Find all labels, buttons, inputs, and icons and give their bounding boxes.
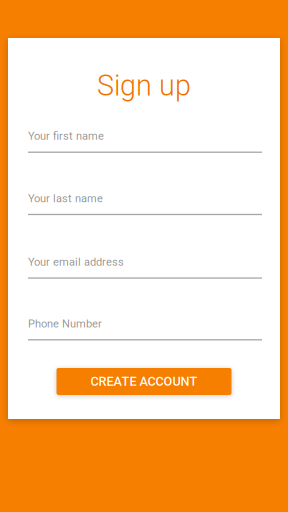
- button[interactable]: Your last name: [8, 192, 280, 215]
- staticText: Your last name: [28, 192, 103, 205]
- button[interactable]: Phone Number: [8, 317, 280, 340]
- staticText: Phone Number: [28, 317, 102, 330]
- staticText: Sign up: [97, 69, 191, 103]
- staticText: Your first name: [28, 130, 104, 143]
- staticText: Your email address: [28, 255, 124, 268]
- staticText: CREATE ACCOUNT: [90, 374, 197, 389]
- button[interactable]: CREATE ACCOUNT: [56, 368, 231, 395]
- button[interactable]: Your first name: [8, 130, 280, 153]
- button[interactable]: Your email address: [8, 255, 280, 279]
